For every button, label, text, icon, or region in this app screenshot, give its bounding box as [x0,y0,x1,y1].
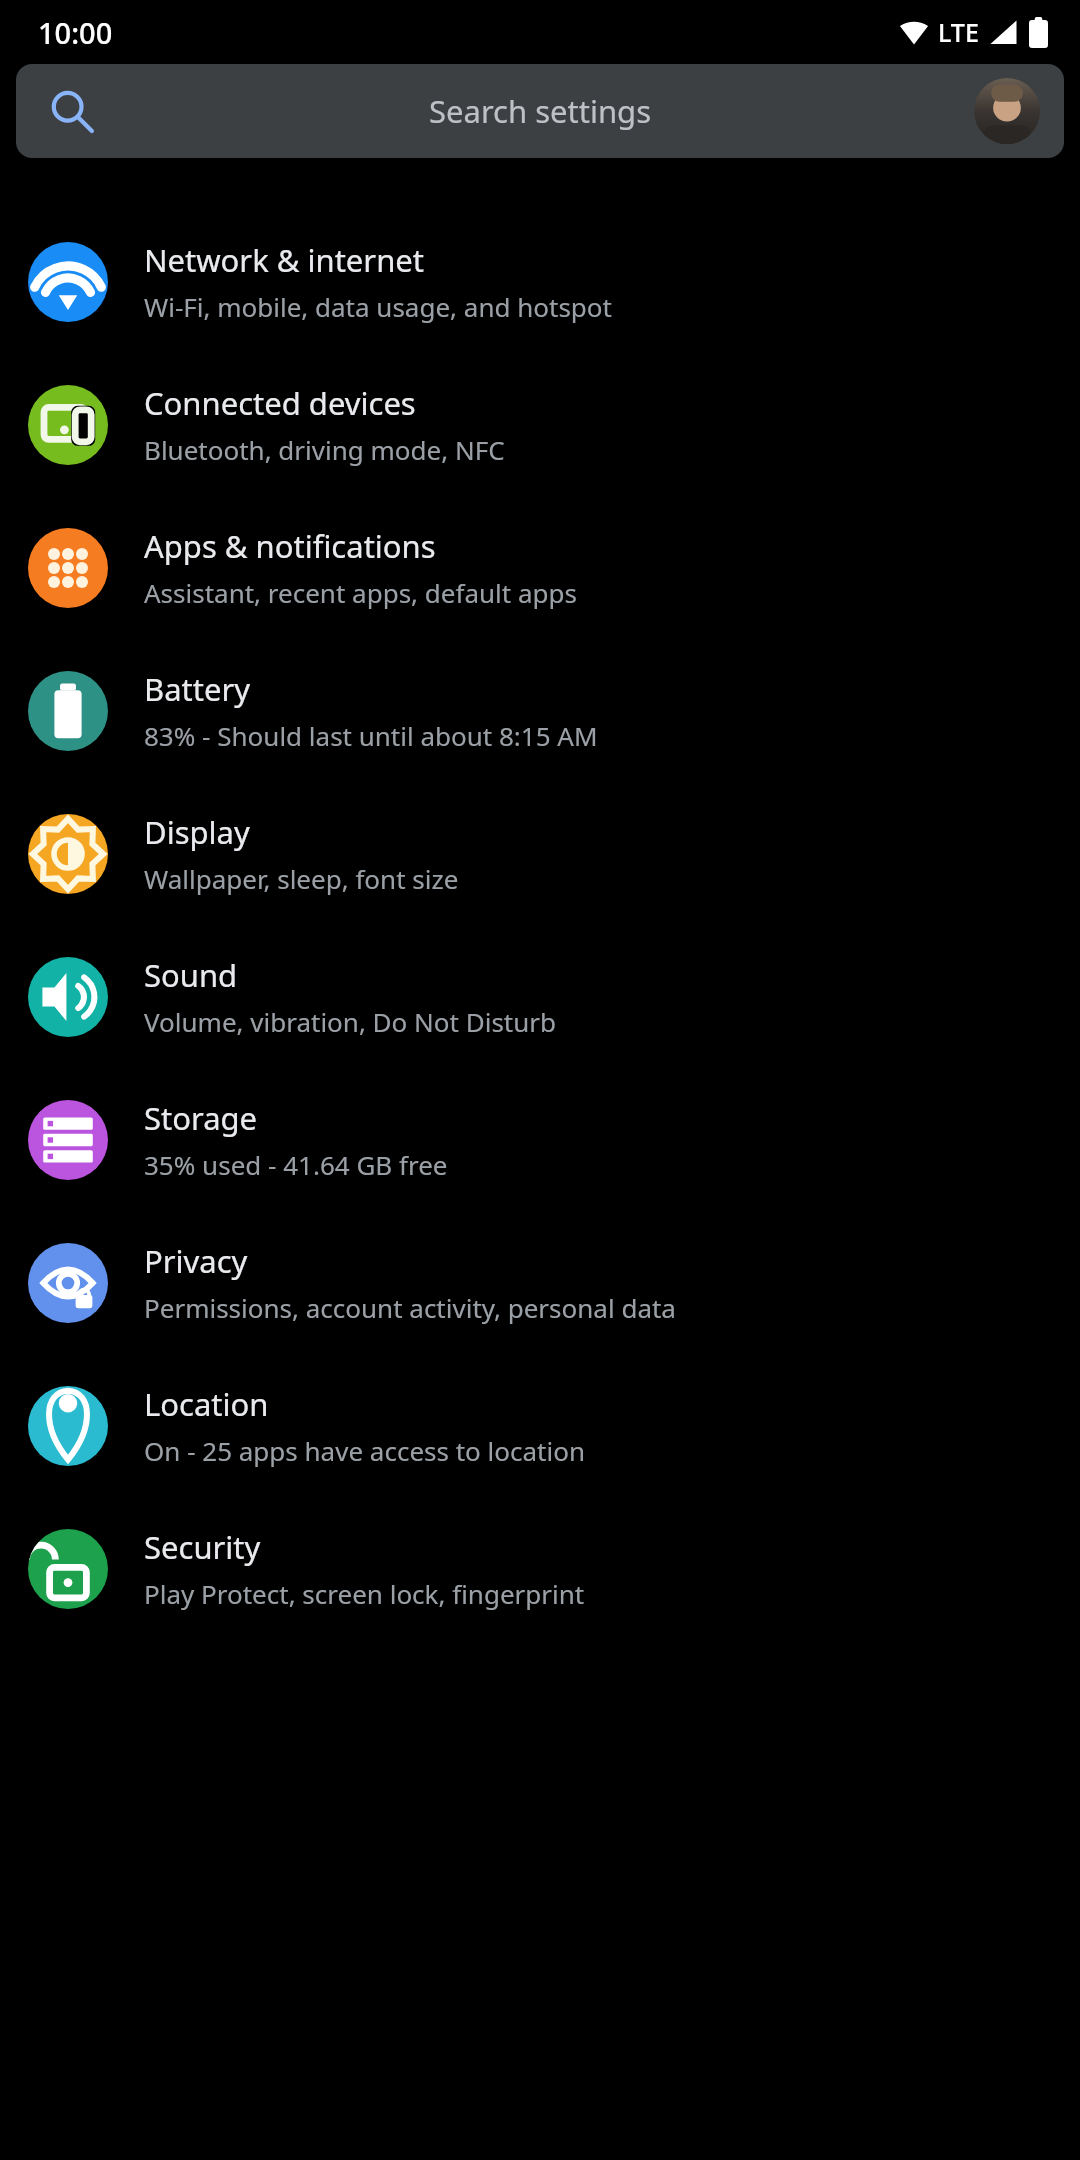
button[interactable]: Apps & notifications [0,496,1080,639]
staticText: Battery [144,668,251,710]
staticText: Location [144,1383,269,1425]
button[interactable]: Search [16,64,1064,158]
staticText: Wi-Fi, mobile, data usage, and hotspot [144,289,612,324]
staticText: Network & internet [144,239,424,281]
staticText: Security [144,1526,261,1568]
staticText: 35% used - 41.64 GB free [144,1147,448,1182]
button[interactable]: Privacy [0,1211,1080,1354]
staticText: Wallpaper, sleep, font size [144,861,459,896]
staticText: Privacy [144,1240,248,1282]
staticText: Bluetooth, driving mode, NFC [144,432,505,467]
staticText: On - 25 apps have access to location [144,1433,585,1468]
staticText: Volume, vibration, Do Not Disturb [144,1004,557,1039]
staticText: 10:00 [38,13,113,52]
staticText: Permissions, account activity, personal … [144,1290,676,1325]
button[interactable]: Security [0,1497,1080,1640]
button[interactable]: Account [974,78,1040,144]
staticText: Storage [144,1097,258,1139]
staticText: Play Protect, screen lock, fingerprint [144,1576,585,1611]
staticText: 83% - Should last until about 8:15 AM [144,718,598,753]
staticText: Assistant, recent apps, default apps [144,575,577,610]
staticText: Display [144,811,250,853]
staticText: Connected devices [144,382,416,424]
staticText: Sound [144,954,238,996]
button[interactable]: Sound [0,925,1080,1068]
button[interactable]: Network & internet [0,210,1080,353]
other: Search [50,90,92,132]
button[interactable]: Battery [0,639,1080,782]
staticText: Apps & notifications [144,525,436,567]
button[interactable]: Display [0,782,1080,925]
button[interactable]: Location [0,1354,1080,1497]
button[interactable]: Storage [0,1068,1080,1211]
staticText: LTE [938,15,979,49]
button[interactable]: Connected devices [0,353,1080,496]
staticText: Search settings [429,90,651,132]
